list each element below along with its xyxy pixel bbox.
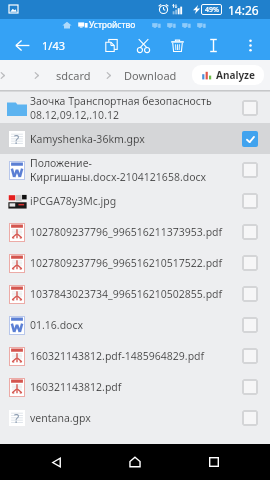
staticText: Положение- bbox=[30, 156, 92, 170]
staticText: ventana.gpx bbox=[30, 411, 91, 425]
button[interactable]: 160321143812.pdf-1485964829.pdf bbox=[0, 340, 270, 371]
button[interactable]: 01.16.docx bbox=[0, 309, 270, 340]
button[interactable]: Cut bbox=[129, 31, 157, 60]
staticText: ? bbox=[14, 131, 20, 147]
staticText: 1027809237796_996516211373953.pdf bbox=[30, 225, 223, 239]
button[interactable]: Home bbox=[112, 444, 158, 480]
button[interactable]: Home bbox=[62, 20, 72, 30]
staticText: 160321143812.pdf-1485964829.pdf bbox=[30, 349, 205, 363]
button[interactable]: Tab 3 bbox=[167, 21, 176, 30]
button[interactable]: Tab 2 bbox=[152, 21, 161, 30]
staticText: Устройство bbox=[89, 19, 136, 31]
button[interactable]: Recents bbox=[191, 444, 237, 480]
button[interactable]: Rename bbox=[199, 31, 227, 60]
staticText: iPCGA78y3Mc.jpg bbox=[30, 194, 117, 208]
staticText: 160321143812.pdf bbox=[30, 380, 122, 394]
button[interactable]: Tab 4 bbox=[182, 21, 191, 30]
button[interactable]: Select bbox=[234, 278, 266, 309]
button[interactable]: Back bbox=[8, 31, 36, 60]
button[interactable]: 1027809237796_996516211373953.pdf bbox=[0, 216, 270, 247]
button[interactable]: sdcard bbox=[56, 68, 91, 83]
staticText: Analyze bbox=[216, 68, 255, 82]
button[interactable]: Положение- bbox=[0, 154, 270, 185]
button[interactable]: 160321143812.pdf bbox=[0, 371, 270, 402]
staticText: ? bbox=[14, 410, 20, 426]
button[interactable]: Back bbox=[33, 444, 79, 480]
button[interactable]: Select bbox=[234, 92, 266, 123]
staticText: 49% bbox=[205, 5, 219, 15]
button[interactable]: Select bbox=[234, 123, 266, 154]
button[interactable]: More options bbox=[236, 31, 264, 60]
staticText: 08.12,09.12,.10.12 bbox=[30, 108, 119, 122]
button[interactable]: Delete bbox=[163, 31, 191, 60]
button[interactable]: Analyze bbox=[192, 65, 264, 85]
button[interactable]: Заочка Транспортная безопасность bbox=[0, 92, 270, 123]
button[interactable]: Select bbox=[234, 154, 266, 185]
button[interactable]: Select bbox=[234, 216, 266, 247]
button[interactable]: 1027809237796_996516210517522.pdf bbox=[0, 247, 270, 278]
staticText: 14:26 bbox=[228, 2, 259, 18]
staticText: 1/43 bbox=[42, 38, 65, 53]
button[interactable]: Select bbox=[234, 402, 266, 433]
button[interactable]: Select bbox=[234, 247, 266, 278]
button[interactable]: Select bbox=[234, 185, 266, 216]
button[interactable]: iPCGA78y3Mc.jpg bbox=[0, 185, 270, 216]
staticText: 1027809237796_996516210517522.pdf bbox=[30, 256, 223, 270]
staticText: Kamyshenka-36km.gpx bbox=[30, 132, 145, 146]
button[interactable]: ? bbox=[0, 123, 270, 154]
button[interactable]: Select bbox=[234, 340, 266, 371]
button[interactable]: 1037843023734_996516210502855.pdf bbox=[0, 278, 270, 309]
staticText: 1037843023734_996516210502855.pdf bbox=[30, 287, 223, 301]
button[interactable]: ? bbox=[0, 402, 270, 433]
button[interactable]: Copy bbox=[97, 31, 125, 60]
staticText: 01.16.docx bbox=[30, 318, 84, 332]
staticText: Заочка Транспортная безопасность bbox=[30, 94, 212, 108]
button[interactable]: Устройство bbox=[78, 19, 270, 31]
button[interactable]: Tab 5 bbox=[197, 21, 206, 30]
staticText: Киргишаны.docx-2104121658.docx bbox=[30, 170, 207, 184]
button[interactable]: Select bbox=[234, 371, 266, 402]
button[interactable]: Download bbox=[124, 68, 177, 83]
button[interactable]: Select bbox=[234, 309, 266, 340]
